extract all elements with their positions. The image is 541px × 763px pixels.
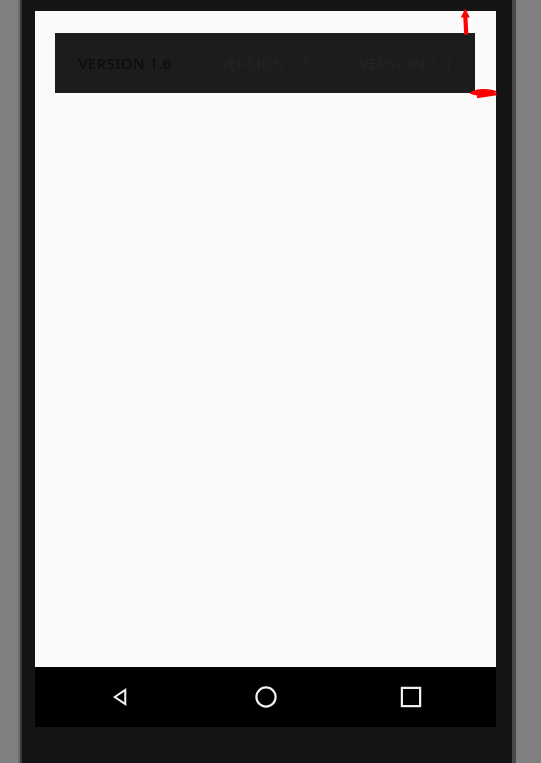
button[interactable]: Recent apps: [351, 667, 471, 727]
staticText: VERSION 1.6: [78, 53, 172, 73]
button[interactable]: VERSION 1.4: [335, 33, 475, 93]
button[interactable]: Back: [60, 667, 180, 727]
button[interactable]: Home: [206, 667, 326, 727]
